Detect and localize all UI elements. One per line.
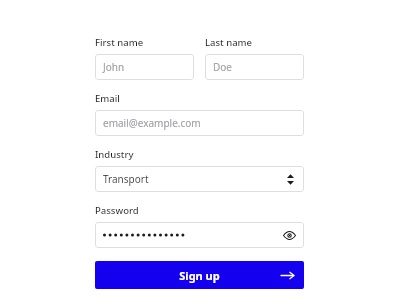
staticText: Sign up [179,268,220,283]
button[interactable]: Sign up [95,261,304,289]
staticText: Industry [95,148,134,161]
other: Select industry [283,172,297,186]
button[interactable]: Show password [281,227,297,243]
staticText: First name [95,36,144,49]
staticText: Email [95,92,120,105]
button[interactable]: Doe [205,54,304,80]
staticText: Last name [205,36,253,49]
staticText: Doe [213,60,232,74]
button[interactable]: Show password [95,222,304,248]
button[interactable]: email@example.com [95,110,304,136]
staticText: Transport [103,172,149,186]
button[interactable]: Transport [95,166,304,192]
staticText: email@example.com [103,116,201,130]
staticText: Password [95,204,139,217]
button[interactable]: John [95,54,194,80]
staticText: John [103,60,125,74]
